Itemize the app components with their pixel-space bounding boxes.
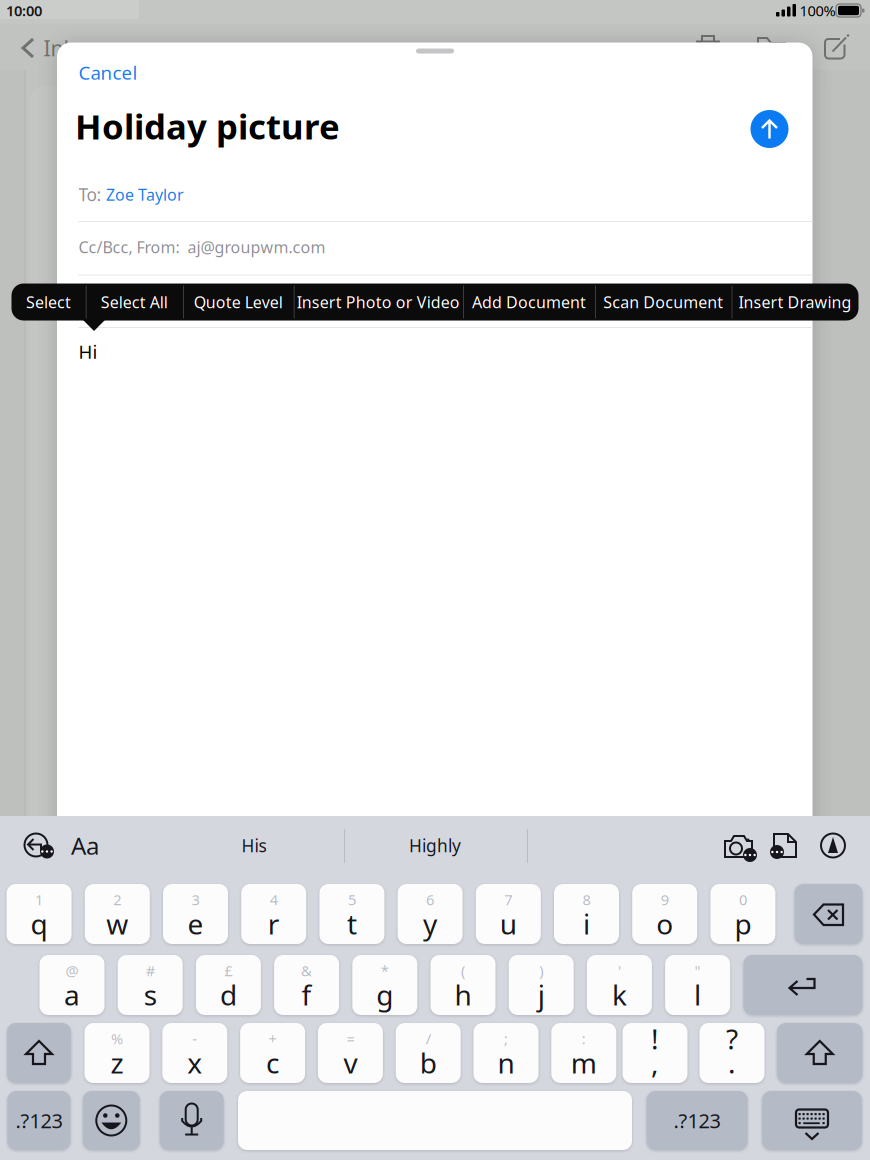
button[interactable]: " [665, 955, 730, 1015]
staticText: ; [504, 1029, 508, 1048]
staticText: # [146, 961, 155, 980]
button[interactable]: ' [587, 955, 652, 1015]
staticText: 5 [348, 890, 356, 909]
staticText: Scan Document [603, 291, 723, 313]
staticText: 10:00 [6, 1, 42, 20]
button[interactable]: Insert Photo [0, 0, 870, 1160]
staticText: .?123 [674, 1107, 721, 1134]
staticText: y [423, 905, 437, 942]
button[interactable]: / [396, 1023, 461, 1083]
button[interactable]: & [274, 955, 339, 1015]
staticText: 4 [270, 890, 278, 909]
staticText: o [656, 905, 673, 942]
staticText: / [426, 1029, 431, 1048]
staticText: To: [78, 183, 101, 206]
button[interactable]: Highly [350, 825, 520, 865]
button[interactable]: Markup [0, 0, 870, 1160]
staticText: r [268, 905, 280, 942]
button[interactable]: 0 [710, 884, 775, 944]
button[interactable]: Shift [7, 1023, 71, 1083]
button[interactable]: Insert Drawing [731, 283, 858, 320]
button[interactable]: ! [622, 1023, 687, 1083]
button[interactable]: Text Formatting [61, 827, 109, 863]
button[interactable]: Emoji [83, 1091, 140, 1150]
button[interactable]: Add Document [463, 283, 595, 320]
staticText: s [144, 976, 157, 1013]
staticText: Holiday picture [75, 103, 340, 149]
staticText: t [347, 905, 357, 942]
button[interactable]: - [162, 1023, 227, 1083]
staticText: 1 [35, 890, 43, 909]
button[interactable]: 2 [85, 884, 150, 944]
staticText: Select All [101, 291, 168, 313]
staticText: g [376, 976, 393, 1013]
button[interactable]: ) [509, 955, 574, 1015]
button[interactable]: 5 [319, 884, 384, 944]
staticText: % [111, 1029, 123, 1048]
button[interactable]: £ [196, 955, 261, 1015]
button[interactable]: Return [743, 955, 862, 1015]
button[interactable]: Shift [777, 1023, 862, 1083]
button[interactable]: @ [39, 955, 104, 1015]
button[interactable]: 3 [163, 884, 228, 944]
staticText: - [192, 1029, 197, 1048]
staticText: Insert Drawing [738, 291, 851, 313]
button[interactable]: % [84, 1023, 149, 1083]
staticText: u [500, 905, 517, 942]
staticText: " [695, 961, 701, 980]
button[interactable]: Undo [0, 0, 870, 1160]
button[interactable]: 7 [476, 884, 541, 944]
staticText: Quote Level [194, 291, 283, 313]
staticText: z [110, 1044, 123, 1081]
button[interactable]: Zoe Taylor [106, 177, 216, 211]
button[interactable]: ( [430, 955, 495, 1015]
button[interactable]: 8 [554, 884, 619, 944]
staticText: Inbox [43, 34, 99, 62]
staticText: w [106, 905, 128, 942]
button[interactable]: 4 [241, 884, 306, 944]
button[interactable]: Hide Keyboard [762, 1091, 862, 1150]
staticText: k [612, 976, 627, 1013]
staticText: @ [65, 961, 78, 980]
staticText: Highly [409, 834, 461, 857]
staticText: j [538, 976, 545, 1013]
button[interactable]: Delete [794, 884, 862, 944]
staticText: v [343, 1044, 357, 1081]
button[interactable]: + [240, 1023, 305, 1083]
button[interactable]: Quote Level [183, 283, 294, 320]
staticText: : [582, 1029, 586, 1048]
button[interactable]: Dictate [160, 1091, 224, 1150]
button[interactable]: 1 [7, 884, 72, 944]
button[interactable]: Scan Document [595, 283, 731, 320]
staticText: Insert Photo or Video [297, 291, 460, 313]
button[interactable]: Insert Photo or Video [294, 283, 463, 320]
staticText: i [583, 905, 590, 942]
button[interactable]: Send [750, 110, 788, 148]
button[interactable]: ; [473, 1023, 538, 1083]
button[interactable]: = [318, 1023, 383, 1083]
button[interactable]: Insert Document [0, 0, 870, 1160]
staticText: Cancel [78, 60, 137, 85]
staticText: Aa [71, 830, 99, 861]
button[interactable]: Select All [86, 283, 183, 320]
staticText: 9 [661, 890, 669, 909]
staticText: .?123 [15, 1107, 62, 1134]
staticText: ! [651, 1020, 659, 1057]
staticText: 3 [191, 890, 199, 909]
button[interactable]: His [169, 825, 339, 865]
button[interactable]: Select [11, 283, 86, 320]
staticText: 6 [426, 890, 434, 909]
button[interactable]: 6 [398, 884, 463, 944]
staticText: l [694, 976, 701, 1013]
staticText: , [651, 1044, 659, 1081]
button[interactable]: Cancel [78, 53, 182, 91]
button[interactable]: # [118, 955, 183, 1015]
button[interactable]: ? [699, 1023, 764, 1083]
button[interactable]: * [352, 955, 417, 1015]
button[interactable]: .?123 [647, 1091, 748, 1150]
button[interactable]: : [551, 1023, 616, 1083]
button[interactable]: 9 [632, 884, 697, 944]
staticText: Add Document [472, 291, 586, 313]
button[interactable]: .?123 [7, 1091, 70, 1150]
